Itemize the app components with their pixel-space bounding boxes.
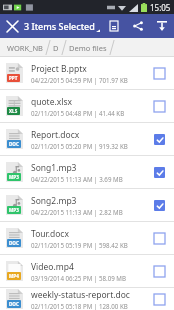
button[interactable]: MP4 [0,255,174,287]
staticText: 3 Items Selected [24,20,95,32]
button[interactable]: Selected [150,130,168,148]
staticText: weekly-status-report.doc [31,289,130,301]
button[interactable]: Selected [150,196,168,214]
button[interactable]: WORK_NB [5,43,45,53]
staticText: WORK_NB [7,43,43,53]
staticText: 02/11/2015 05:19 PM | 598.42 KB [31,241,128,249]
staticText: Report.docx [31,129,80,141]
staticText: Song1.mp3 [31,162,77,174]
staticText: DOC [9,301,19,307]
button[interactable]: Share [126,14,150,38]
staticText: quote.xlsx [31,96,73,108]
staticText: D [53,43,59,53]
staticText: PPT [9,75,18,81]
button[interactable]: MP3 [0,156,174,188]
staticText: MP3 [9,174,19,180]
staticText: 04/22/2015 11:13 AM | 2.82 MB [31,208,123,216]
staticText: 15:05 [150,2,171,13]
staticText: DOC [9,240,19,246]
button[interactable]: DOC [0,123,174,155]
staticText: 02/11/2015 05:18 PM | 128.00 KB [31,302,128,310]
button[interactable]: PPT [0,57,174,89]
staticText: DOC [9,141,19,147]
button[interactable]: Download [150,14,174,38]
staticText: XLS [9,108,18,114]
button[interactable]: D [51,43,61,53]
staticText: Video.mp4 [31,261,74,273]
button[interactable]: Not selected [150,262,168,280]
staticText: Tour.docx [31,228,69,240]
button[interactable]: 3 Items Selected [24,14,102,38]
button[interactable]: MP3 [0,189,174,221]
button[interactable]: Save [102,14,126,38]
button[interactable]: Not selected [150,229,168,247]
button[interactable]: DOC [0,288,174,310]
staticText: MP3 [9,207,19,213]
staticText: 02/11/2015 05:20 PM | 919.32 KB [31,142,128,150]
staticText: 02/11/2015 04:48 PM | 41.44 KB [31,109,125,117]
staticText: 03/19/2014 06:25 PM | 58.09 MB [31,274,126,282]
button[interactable]: Close selection [0,14,24,38]
button[interactable]: DOC [0,222,174,254]
staticText: 04/22/2015 11:13 AM | 3.69 MB [31,175,123,183]
button[interactable]: Not selected [150,290,168,308]
button[interactable]: Not selected [150,97,168,115]
staticText: MP4 [9,273,19,279]
staticText: Song2.mp3 [31,195,77,207]
staticText: Project B.pptx [31,63,87,75]
staticText: Demo files [69,43,107,53]
button[interactable]: Not selected [150,64,168,82]
button[interactable]: XLS [0,90,174,122]
button[interactable]: Demo files [67,43,109,53]
button[interactable]: Selected [150,163,168,181]
staticText: 04/22/2015 04:59 PM | 701.97 KB [31,76,128,84]
